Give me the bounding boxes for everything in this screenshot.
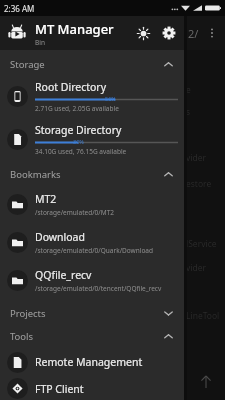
button[interactable]: Scroll to top <box>196 372 216 392</box>
staticText: 56% <box>105 95 116 102</box>
staticText: Tools <box>10 330 34 343</box>
staticText: FTP Client <box>35 382 84 396</box>
button[interactable]: Tools <box>0 326 184 347</box>
staticText: Projects <box>10 307 46 320</box>
button[interactable]: Bookmarks <box>0 164 184 185</box>
button[interactable]: Projects <box>0 303 184 324</box>
staticText: 2:36 AM <box>4 3 35 14</box>
button[interactable]: Storage Directory <box>0 118 184 161</box>
staticText: Bin <box>35 38 45 47</box>
staticText: LineTool <box>186 310 220 322</box>
staticText: 2/ <box>188 26 199 41</box>
staticText: Download <box>35 230 85 244</box>
staticText: Storage Directory <box>35 123 122 137</box>
button[interactable]: Remote Management <box>0 347 184 377</box>
staticText: vider <box>186 152 207 164</box>
staticText: 34.10G used, 76.15G available <box>35 147 127 156</box>
button[interactable]: MT2 <box>0 185 184 223</box>
button[interactable]: Storage <box>0 54 184 75</box>
staticText: MT Manager <box>35 20 114 38</box>
button[interactable]: Root Directory <box>0 75 184 118</box>
staticText: estore <box>186 178 212 190</box>
staticText: Storage <box>10 58 45 71</box>
staticText: QQfile_recv <box>35 268 92 282</box>
staticText: lService <box>186 238 217 250</box>
staticText: Root Directory <box>35 80 107 94</box>
staticText: Bookmarks <box>10 168 61 181</box>
staticText: e <box>186 84 191 96</box>
button[interactable]: More options <box>203 24 221 42</box>
button[interactable]: Toggle theme <box>130 20 156 46</box>
staticText: /storage/emulated/0/tencent/QQfile_recv <box>35 284 162 293</box>
staticText: vider <box>186 262 207 274</box>
staticText: 30% <box>73 138 84 145</box>
staticText: s <box>186 106 191 118</box>
button[interactable]: FTP Client <box>0 377 184 400</box>
staticText: MT2 <box>35 192 57 206</box>
button[interactable]: Download <box>0 223 184 261</box>
staticText: Remote Management <box>35 355 143 369</box>
button[interactable]: QQfile_recv <box>0 261 184 299</box>
staticText: /storage/emulated/0/Quark/Download <box>35 246 153 255</box>
button[interactable]: MT Manager <box>0 16 184 50</box>
staticText: 2.71G used, 2.05G available <box>35 104 119 113</box>
button[interactable]: Settings <box>156 20 182 46</box>
staticText: /storage/emulated/0/MT2 <box>35 208 114 217</box>
